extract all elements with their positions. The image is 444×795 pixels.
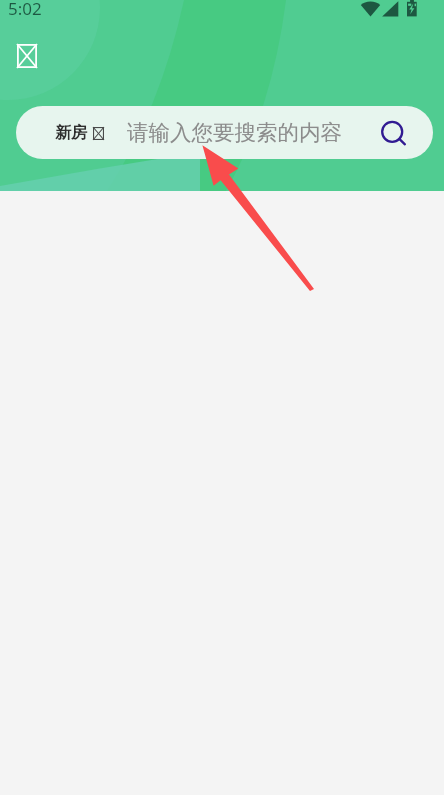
button[interactable]: Back <box>17 44 37 68</box>
button[interactable]: 新房 <box>16 106 433 159</box>
staticText: 5:02 <box>8 0 42 20</box>
staticText: 请输入您要搜索的内容 <box>127 119 342 146</box>
staticText: 新房 <box>55 123 87 143</box>
